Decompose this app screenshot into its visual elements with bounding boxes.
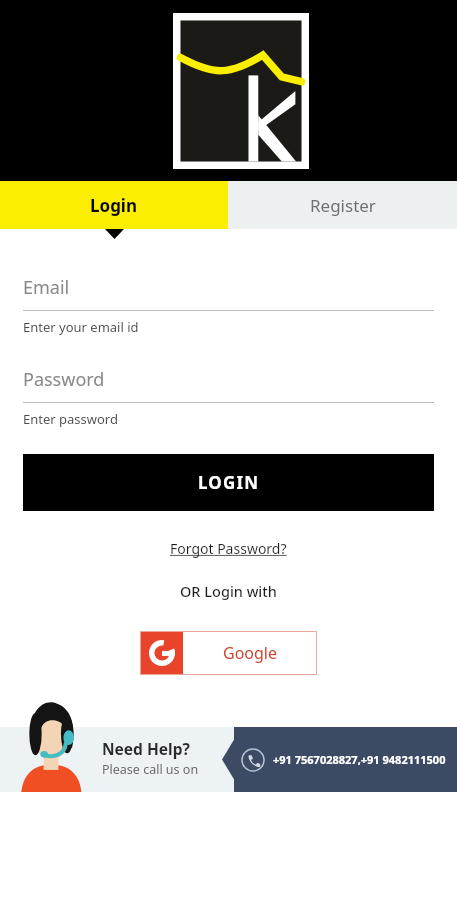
staticText: +91 7567028827,+91 9482111500 [273, 752, 446, 767]
staticText: OR Login with [180, 581, 277, 601]
button[interactable]: Forgot Password? [166, 535, 291, 562]
staticText: Need Help? [102, 738, 190, 759]
staticText: LOGIN [198, 471, 260, 494]
staticText: Email [23, 275, 70, 300]
staticText: Please call us on [102, 761, 199, 778]
button[interactable]: Sign in with Google [140, 631, 317, 675]
staticText: Password [23, 367, 105, 392]
button[interactable]: LOGIN [23, 454, 434, 511]
button[interactable]: Login [0, 181, 228, 229]
button[interactable]: Register [228, 181, 457, 229]
staticText: Login [90, 194, 138, 217]
button[interactable]: Call support [222, 727, 457, 792]
other: Call support [241, 748, 265, 772]
staticText: Register [310, 194, 376, 217]
staticText: Forgot Password? [170, 539, 287, 558]
staticText: Enter your email id [23, 318, 139, 336]
staticText: Enter password [23, 410, 118, 428]
staticText: Google [223, 642, 278, 664]
button[interactable]: Need Help? [102, 738, 199, 778]
other: Sign in with Google [149, 640, 175, 666]
